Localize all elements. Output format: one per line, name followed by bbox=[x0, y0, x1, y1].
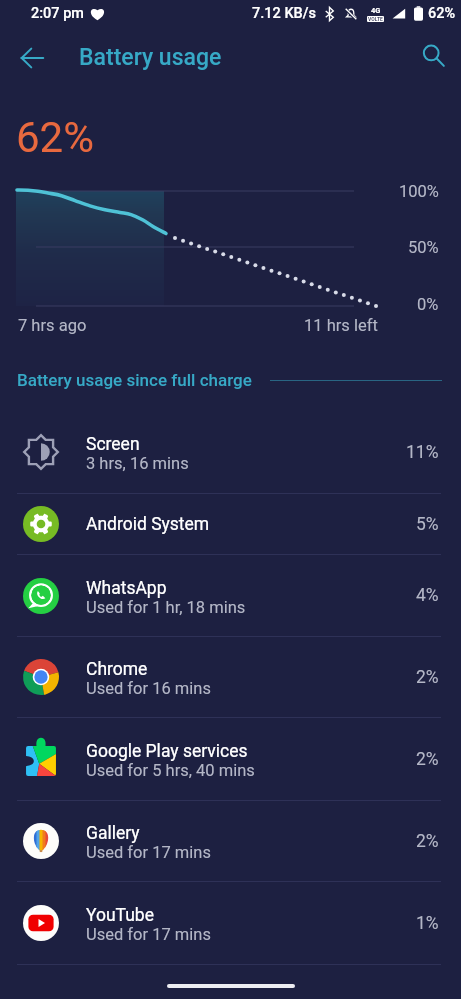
staticText: 2% bbox=[416, 749, 439, 770]
staticText: Google Play services bbox=[86, 741, 248, 762]
button[interactable]: Chrome bbox=[0, 637, 461, 717]
staticText: Used for 5 hrs, 40 mins bbox=[86, 761, 255, 780]
button[interactable]: WhatsApp bbox=[0, 555, 461, 636]
staticText: VOLTE bbox=[368, 16, 383, 22]
staticText: Android System bbox=[86, 514, 210, 535]
button[interactable]: Search bbox=[409, 31, 457, 79]
staticText: 4% bbox=[416, 585, 439, 606]
button[interactable]: YouTube bbox=[0, 882, 461, 964]
staticText: 4G bbox=[371, 6, 381, 15]
staticText: Gallery bbox=[86, 823, 140, 844]
staticText: 2:07 pm bbox=[31, 5, 84, 22]
staticText: Battery usage bbox=[79, 44, 222, 71]
staticText: 100% bbox=[399, 182, 439, 201]
button[interactable]: Back bbox=[8, 34, 56, 82]
staticText: Chrome bbox=[86, 659, 148, 680]
staticText: Used for 16 mins bbox=[86, 679, 211, 698]
staticText: 50% bbox=[408, 238, 439, 257]
staticText: YouTube bbox=[86, 905, 154, 926]
staticText: 3 hrs, 16 mins bbox=[86, 454, 189, 473]
button[interactable]: Gallery bbox=[0, 801, 461, 881]
button[interactable]: Android System bbox=[0, 494, 461, 554]
staticText: 2% bbox=[416, 831, 439, 852]
staticText: 1% bbox=[416, 913, 439, 934]
staticText: 7 hrs ago bbox=[18, 316, 87, 335]
staticText: 2% bbox=[416, 667, 439, 688]
staticText: 11 hrs left bbox=[304, 316, 378, 335]
staticText: Used for 17 mins bbox=[86, 843, 211, 862]
staticText: Used for 1 hr, 18 mins bbox=[86, 598, 246, 617]
staticText: 62% bbox=[428, 5, 456, 22]
staticText: WhatsApp bbox=[86, 578, 167, 599]
staticText: 7.12 KB/s bbox=[252, 5, 316, 22]
staticText: 0% bbox=[417, 295, 439, 314]
staticText: Used for 17 mins bbox=[86, 925, 211, 944]
button[interactable]: Screen bbox=[0, 411, 461, 493]
staticText: 62% bbox=[16, 113, 94, 162]
staticText: 5% bbox=[416, 514, 439, 535]
staticText: Screen bbox=[86, 434, 140, 455]
button[interactable]: Google Play services bbox=[0, 718, 461, 800]
staticText: Battery usage since full charge bbox=[17, 370, 252, 390]
staticText: 11% bbox=[406, 442, 439, 463]
